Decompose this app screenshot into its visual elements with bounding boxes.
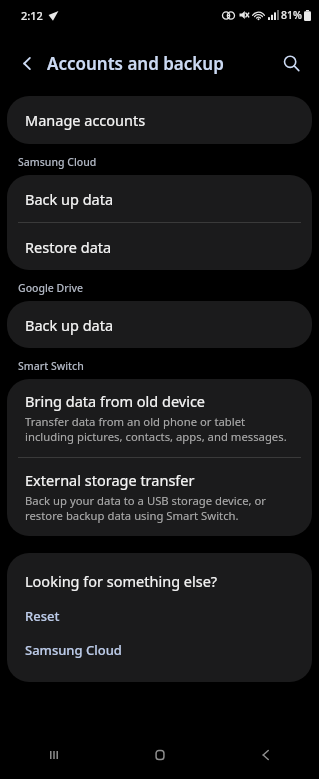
button[interactable]: Back up data (7, 301, 312, 348)
staticText: Smart Switch (18, 359, 84, 373)
staticText: Manage accounts (25, 110, 146, 130)
button[interactable]: Back (213, 731, 319, 779)
button[interactable]: Reset (7, 604, 312, 628)
button[interactable]: External storage transfer (7, 458, 312, 536)
staticText: Accounts and backup (47, 52, 224, 75)
button[interactable]: Back up data (7, 175, 312, 222)
button[interactable]: Home (107, 731, 213, 779)
staticText: Samsung Cloud (18, 155, 97, 169)
staticText: Looking for something else? (25, 571, 218, 591)
staticText: Restore data (25, 237, 112, 257)
staticText: External storage transfer (25, 470, 195, 490)
staticText: Samsung Cloud (25, 641, 122, 659)
button[interactable]: Samsung Cloud (7, 638, 312, 662)
staticText: 81% (281, 8, 302, 22)
staticText: Back up your data to a USB storage devic… (25, 493, 296, 523)
button[interactable]: Restore data (7, 223, 312, 270)
staticText: Google Drive (18, 281, 84, 295)
button[interactable]: Bring data from old device (7, 379, 312, 457)
staticText: Bring data from old device (25, 391, 206, 411)
button[interactable]: Recents (0, 731, 107, 779)
staticText: 2:12 (21, 8, 43, 23)
button[interactable]: Search (271, 43, 311, 83)
staticText: Reset (25, 607, 60, 625)
button[interactable]: Manage accounts (7, 96, 312, 144)
button[interactable]: Navigate up (9, 45, 45, 81)
staticText: Back up data (25, 315, 114, 335)
staticText: Transfer data from an old phone or table… (25, 414, 296, 444)
staticText: Back up data (25, 189, 114, 209)
